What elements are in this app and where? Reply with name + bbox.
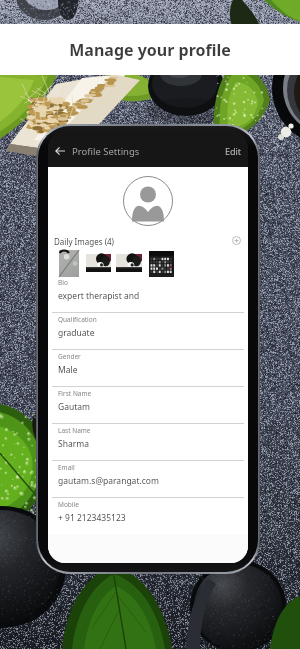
staticText: Bio — [58, 278, 68, 287]
staticText: + 91 2123435123 — [58, 512, 126, 524]
button[interactable]: Gender — [48, 350, 248, 387]
staticText: Manage your profile — [69, 39, 231, 61]
button[interactable] — [149, 251, 174, 277]
staticText: gautam.s@parangat.com — [58, 475, 159, 487]
staticText: Profile Settings — [72, 145, 140, 158]
staticText: First Name — [58, 389, 92, 398]
button[interactable]: Daily Images (4) — [54, 236, 115, 247]
button[interactable]: First Name — [48, 387, 248, 424]
button[interactable]: Mobile — [48, 498, 248, 535]
staticText: Mobile — [58, 500, 79, 509]
staticText: graduate — [58, 327, 95, 339]
staticText: Email — [58, 463, 75, 472]
button[interactable]: Last Name — [48, 424, 248, 461]
button[interactable]: Email — [48, 461, 248, 498]
staticText: Qualification — [58, 315, 97, 324]
button[interactable] — [116, 254, 142, 272]
button[interactable]: Add image — [232, 236, 241, 245]
staticText: Daily Images (4) — [54, 236, 115, 247]
staticText: Last Name — [58, 426, 91, 435]
button[interactable]: Qualification — [48, 313, 248, 350]
button[interactable]: Back — [52, 143, 68, 159]
button[interactable]: Bio — [48, 276, 248, 313]
staticText: Sharma — [58, 438, 89, 450]
staticText: Male — [58, 364, 78, 376]
button[interactable] — [59, 250, 79, 277]
staticText: expert therapist and — [58, 290, 140, 302]
button[interactable] — [86, 254, 111, 272]
staticText: Gender — [58, 352, 81, 361]
staticText: Gautam — [58, 401, 90, 413]
button[interactable]: Edit — [223, 143, 244, 159]
staticText: Edit — [225, 145, 242, 157]
